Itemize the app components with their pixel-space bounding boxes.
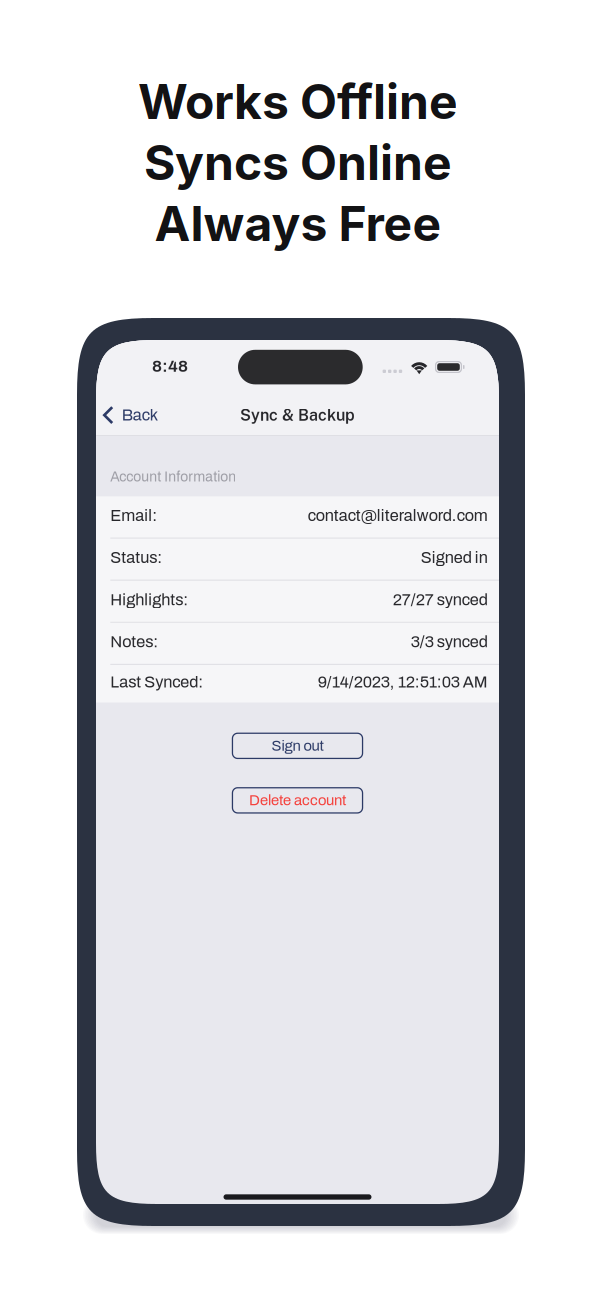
staticText: Email:	[110, 507, 157, 524]
button[interactable]: Delete account	[232, 787, 363, 814]
staticText: 9/14/2023, 12:51:03 AM	[318, 673, 488, 691]
staticText: Syncs Online	[144, 133, 452, 192]
staticText: contact@literalword.com	[308, 507, 488, 524]
staticText: Sign out	[271, 738, 323, 754]
staticText: Back	[122, 406, 158, 424]
staticText: 3/3 synced	[411, 633, 488, 651]
staticText: 8:48	[152, 357, 188, 375]
staticText: Works Offline	[138, 72, 458, 131]
button[interactable]: Back	[96, 395, 256, 435]
staticText: Notes:	[110, 633, 158, 651]
staticText: Status:	[110, 549, 162, 566]
staticText: Delete account	[249, 792, 346, 808]
staticText: Last Synced:	[110, 673, 203, 691]
staticText: Signed in	[421, 549, 488, 566]
staticText: 27/27 synced	[393, 591, 488, 609]
staticText: Account Information	[110, 469, 236, 484]
staticText: Highlights:	[110, 591, 188, 609]
button[interactable]: Sign out	[232, 733, 363, 759]
staticText: Sync & Backup	[240, 406, 355, 424]
staticText: Always Free	[154, 194, 441, 253]
